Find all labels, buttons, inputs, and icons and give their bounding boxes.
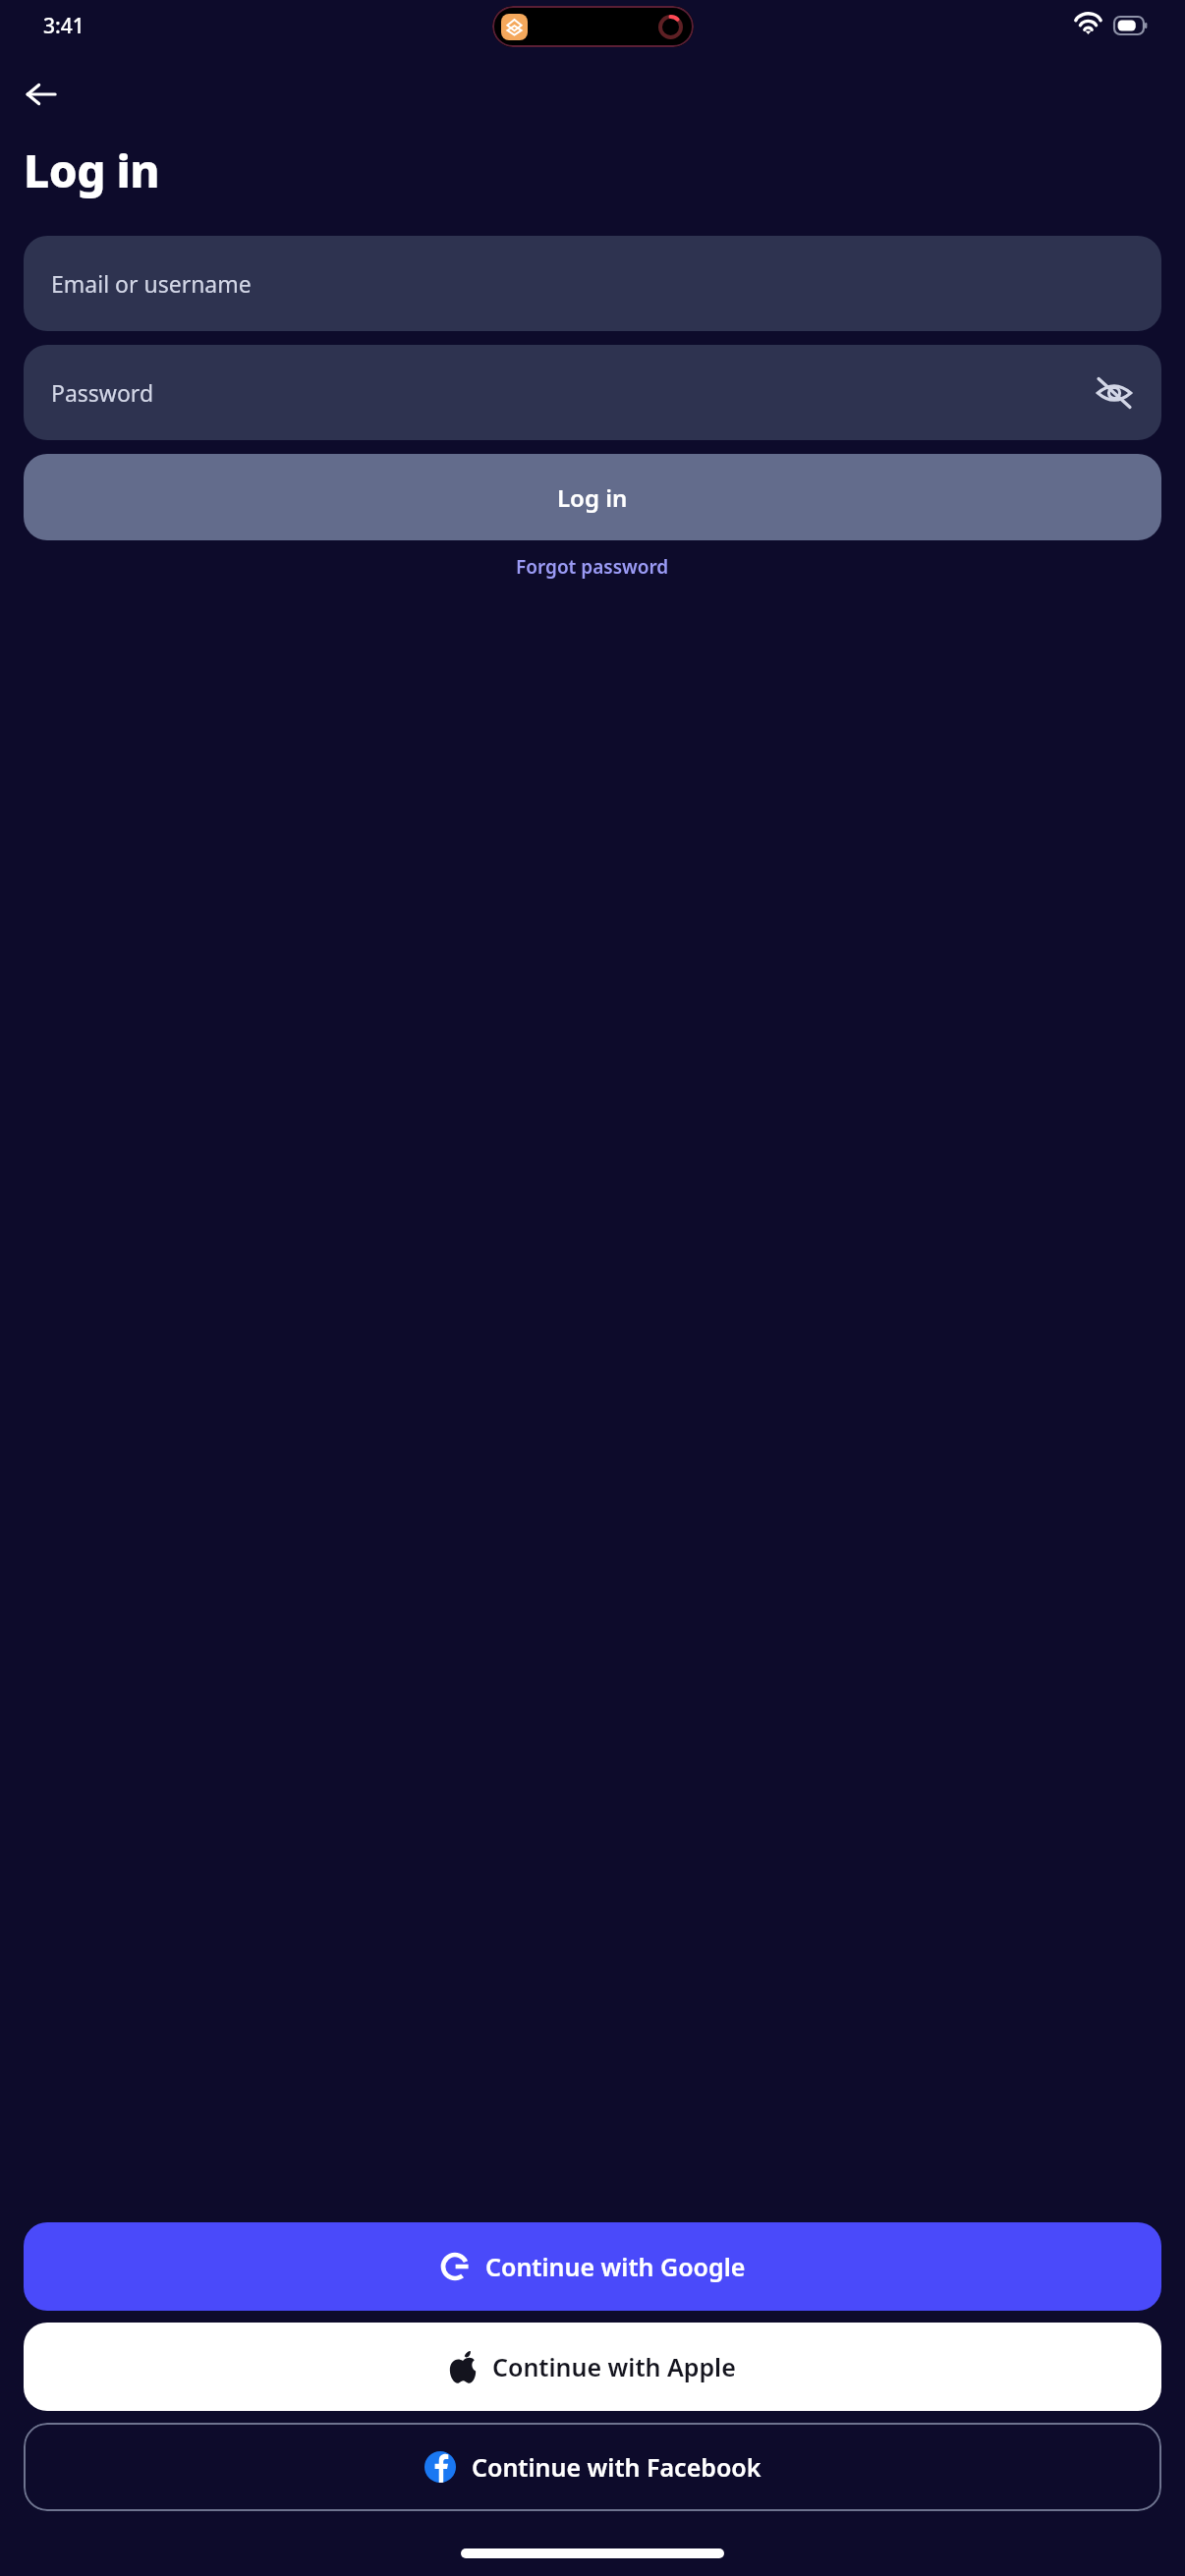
staticText: Forgot password <box>516 554 669 580</box>
staticText: Password <box>51 377 154 408</box>
staticText: Continue with Apple <box>492 2350 736 2383</box>
button[interactable]: Show password <box>1091 369 1138 417</box>
staticText: Continue with Facebook <box>472 2450 762 2484</box>
button[interactable]: Continue with Apple <box>24 2323 1161 2411</box>
button[interactable]: Continue with Google <box>24 2222 1161 2311</box>
button[interactable]: Password <box>24 345 1161 440</box>
staticText: 3:41 <box>43 12 85 40</box>
staticText: Email or username <box>51 268 252 299</box>
button[interactable]: Continue with Facebook <box>24 2423 1161 2511</box>
button[interactable]: Back <box>12 65 71 124</box>
button[interactable]: Forgot password <box>0 554 1185 580</box>
button[interactable]: Email or username <box>24 236 1161 331</box>
staticText: Continue with Google <box>485 2250 746 2283</box>
staticText: Log in <box>24 140 160 201</box>
staticText: Log in <box>557 481 628 514</box>
button[interactable]: Log in <box>24 454 1161 540</box>
